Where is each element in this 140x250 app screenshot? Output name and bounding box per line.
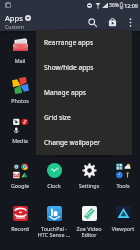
staticText: Clock	[37, 182, 71, 189]
button[interactable]: Media	[3, 116, 37, 150]
staticText: 36%	[109, 2, 119, 9]
staticText: Apps	[5, 13, 23, 23]
button[interactable]: Change wallpaper	[36, 130, 132, 155]
button[interactable]: More options	[122, 14, 138, 30]
button[interactable]: Photos	[3, 76, 37, 110]
staticText: Zoe Video Editor	[72, 225, 106, 238]
staticText: Media	[3, 137, 37, 144]
button[interactable]: Tools	[106, 161, 140, 195]
button[interactable]: TouchPal - HTC Sense ...	[37, 204, 71, 238]
button[interactable]: Viewport	[106, 204, 140, 238]
staticText: 12:09	[124, 2, 138, 9]
button[interactable]: Clock	[37, 161, 71, 195]
button[interactable]: Grid size	[36, 105, 132, 130]
staticText: Show/hide apps	[44, 63, 94, 72]
staticText: Custom	[5, 23, 24, 30]
staticText: Settings	[72, 182, 106, 189]
staticText: Mail	[3, 57, 37, 64]
staticText: Record	[3, 225, 37, 232]
button[interactable]: Play Store	[104, 14, 120, 30]
staticText: Tools	[106, 182, 140, 189]
staticText: Photos	[3, 97, 37, 104]
button[interactable]: Mail	[3, 36, 37, 70]
staticText: Viewport	[106, 225, 140, 232]
staticText: Google	[3, 182, 37, 189]
button[interactable]: Record	[3, 204, 37, 238]
button[interactable]: Rearrange apps	[36, 30, 132, 55]
staticText: TouchPal - HTC Sense ...	[37, 225, 71, 238]
button[interactable]: Manage apps	[36, 80, 132, 105]
staticText: Grid size	[44, 113, 71, 122]
button[interactable]: Google	[3, 161, 37, 195]
button[interactable]: Show/hide apps	[36, 55, 132, 80]
button[interactable]: Zoe Video Editor	[72, 204, 106, 238]
button[interactable]: Search	[84, 14, 100, 30]
button[interactable]: Settings	[72, 161, 106, 195]
staticText: Manage apps	[44, 88, 86, 97]
staticText: Rearrange apps	[44, 38, 94, 47]
staticText: Change wallpaper	[44, 138, 101, 147]
